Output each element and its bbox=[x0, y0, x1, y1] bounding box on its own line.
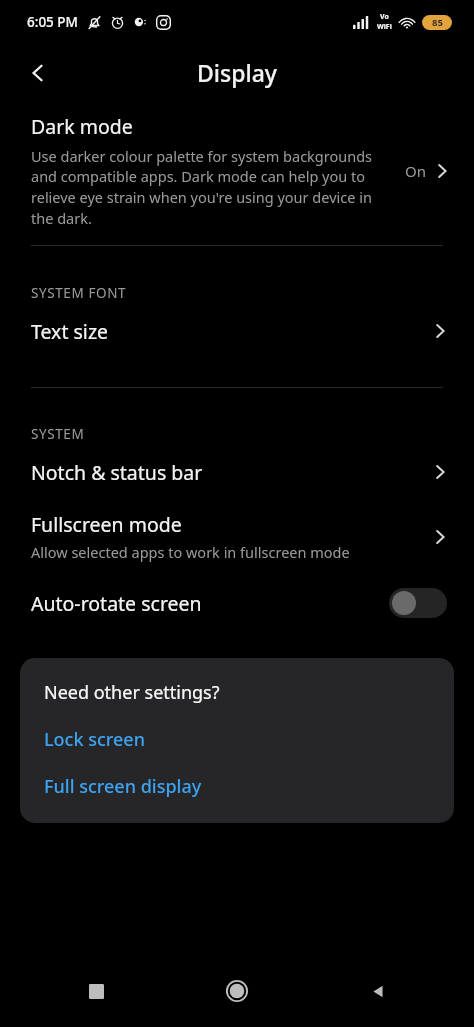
staticText: Allow selected apps to work in fullscree… bbox=[31, 542, 350, 562]
staticText: 6:05 PM bbox=[27, 13, 78, 31]
button[interactable]: Back bbox=[16, 51, 60, 95]
staticText: Need other settings? bbox=[44, 680, 220, 705]
staticText: Text size bbox=[31, 318, 430, 345]
staticText: Fullscreen mode bbox=[31, 511, 182, 538]
button[interactable]: Auto-rotate screen bbox=[0, 572, 474, 634]
staticText: Dark mode bbox=[31, 113, 133, 140]
button[interactable]: Dark mode bbox=[0, 111, 474, 231]
staticText: On bbox=[405, 161, 426, 181]
button[interactable]: Text size bbox=[0, 302, 474, 360]
button[interactable]: Fullscreen mode bbox=[0, 501, 474, 572]
staticText: Auto-rotate screen bbox=[31, 590, 389, 617]
button[interactable]: Lock screen bbox=[44, 727, 145, 752]
button[interactable]: Notch & status bar bbox=[0, 443, 474, 501]
button[interactable]: Back bbox=[354, 967, 402, 1015]
button[interactable]: Home bbox=[213, 967, 261, 1015]
staticText: SYSTEM FONT bbox=[31, 284, 127, 302]
staticText: Use darker colour palette for system bac… bbox=[31, 146, 395, 229]
staticText: Vo bbox=[380, 12, 389, 22]
staticText: Notch & status bar bbox=[31, 459, 430, 486]
button[interactable]: Recents bbox=[72, 967, 120, 1015]
staticText: Display bbox=[197, 57, 277, 88]
staticText: WiFi bbox=[377, 22, 392, 32]
staticText: 85 bbox=[432, 16, 443, 29]
button[interactable]: Full screen display bbox=[44, 774, 202, 799]
staticText: SYSTEM bbox=[31, 425, 85, 443]
